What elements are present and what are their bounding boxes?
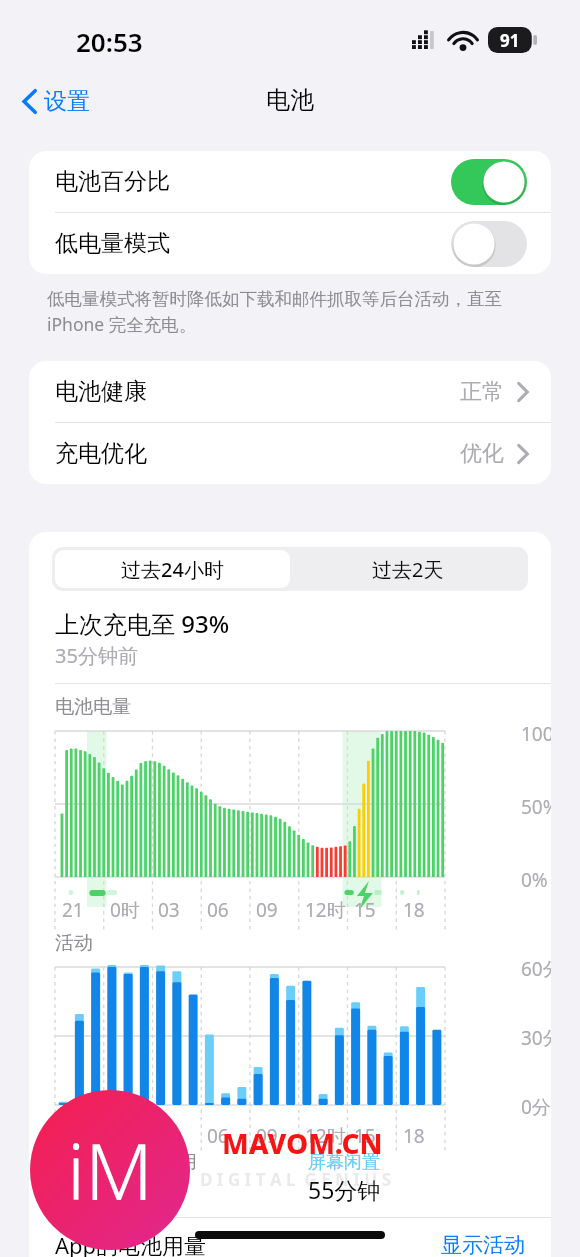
staticText: 过去24小时 — [121, 556, 224, 583]
staticText: 屏幕闲置 — [308, 1151, 380, 1174]
staticText: 低电量模式 — [55, 229, 170, 258]
staticText: 20:53 — [76, 24, 143, 59]
staticText: 上次充电至 93% — [55, 607, 230, 640]
staticText: 30分钟 — [521, 1025, 551, 1051]
button[interactable]: 低电量模式 — [29, 213, 551, 274]
staticText: 电池健康 — [55, 377, 147, 406]
button[interactable]: 电池百分比 — [29, 151, 551, 212]
staticText: 18 — [403, 1123, 425, 1149]
staticText: 0时 — [110, 1123, 140, 1149]
staticText: 35分钟前 — [55, 642, 138, 669]
staticText: D I G I T A L G E N I U S — [200, 1168, 391, 1191]
staticText: 06 — [207, 1123, 229, 1149]
staticText: 优化 — [460, 440, 504, 468]
staticText: 09 — [256, 897, 278, 923]
staticText: 55分钟 — [308, 1174, 381, 1205]
button[interactable]: Back — [16, 82, 96, 121]
staticText: 过去2天 — [372, 556, 444, 583]
staticText: 91 — [500, 29, 520, 52]
staticText: 电池百分比 — [55, 167, 170, 196]
staticText: 12时 — [305, 1123, 346, 1149]
button[interactable]: App的电池用量 — [29, 1218, 551, 1257]
staticText: 0分钟 — [521, 1094, 551, 1120]
staticText: 03 — [158, 897, 180, 923]
staticText: 活动 — [55, 931, 93, 955]
button[interactable]: 过去24小时 — [55, 550, 290, 588]
staticText: 电池电量 — [55, 695, 131, 719]
staticText: 分钟 — [125, 1174, 171, 1203]
staticText: 0时 — [110, 897, 140, 923]
staticText: 09 — [256, 1123, 278, 1149]
staticText: 15 — [354, 1123, 376, 1149]
staticText: 100% — [521, 721, 551, 747]
button[interactable]: 过去2天 — [290, 550, 525, 588]
staticText: 0% — [521, 867, 548, 893]
staticText: 屏幕使用 — [125, 1151, 197, 1174]
staticText: 充电优化 — [55, 439, 147, 468]
staticText: 正常 — [460, 378, 504, 406]
staticText: 电池 — [266, 85, 314, 115]
staticText: 18 — [403, 897, 425, 923]
staticText: 60分钟 — [521, 956, 551, 982]
staticText: 低电量模式将暂时降低如下载和邮件抓取等后台活动，直至 iPhone 完全充电。 — [47, 288, 547, 337]
staticText: 显示活动 — [441, 1232, 525, 1257]
staticText: 12时 — [305, 897, 346, 923]
staticText: 15 — [354, 897, 376, 923]
staticText: 06 — [207, 897, 229, 923]
staticText: MAVOM.CN — [222, 1124, 383, 1162]
staticText: App的电池用量 — [55, 1230, 207, 1257]
button[interactable]: 充电优化 — [29, 423, 551, 484]
staticText: 21 — [62, 897, 84, 923]
staticText: 设置 — [44, 87, 90, 116]
staticText: 03 — [158, 1123, 180, 1149]
staticText: 21 — [62, 1123, 84, 1149]
button[interactable]: 电池健康 — [29, 361, 551, 422]
staticText: 50% — [521, 794, 551, 820]
staticText: iM — [67, 1117, 154, 1223]
